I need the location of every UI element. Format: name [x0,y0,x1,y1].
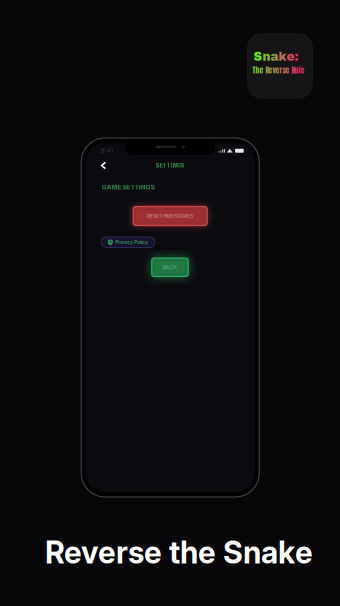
staticText: R [265,65,268,76]
staticText: RESET HIGH SCORES [147,213,193,219]
staticText: T [252,65,255,76]
staticText: e [300,65,304,76]
staticText: 9:41 [101,147,114,154]
staticText: s [282,65,285,76]
staticText: u [294,65,298,76]
staticText: h [255,65,259,76]
staticText: Privacy Policy [115,239,148,245]
staticText [289,65,291,76]
button[interactable]: RESET HIGH SCORES [133,206,207,225]
staticText: e [259,65,263,76]
staticText: Reverse the Snake [45,534,313,571]
staticText: k [278,50,286,63]
staticText: l [298,65,300,76]
staticText: SETTINGS [156,162,185,169]
staticText: a [270,50,278,63]
staticText [263,65,265,76]
staticText: R [291,65,294,76]
staticText: n [262,50,270,63]
staticText: GAME SETTINGS [102,183,155,191]
staticText: : [294,50,298,63]
button[interactable]: Back [97,159,109,171]
staticText: r [279,65,282,76]
staticText: v [272,65,275,76]
button[interactable]: BACK [152,258,188,276]
button[interactable]: Privacy Policy [101,237,155,247]
staticText: BACK [162,264,177,270]
staticText: e [275,65,279,76]
staticText: e [268,65,272,76]
staticText: S [253,50,262,63]
staticText: e [285,65,289,76]
staticText: e [286,50,294,63]
